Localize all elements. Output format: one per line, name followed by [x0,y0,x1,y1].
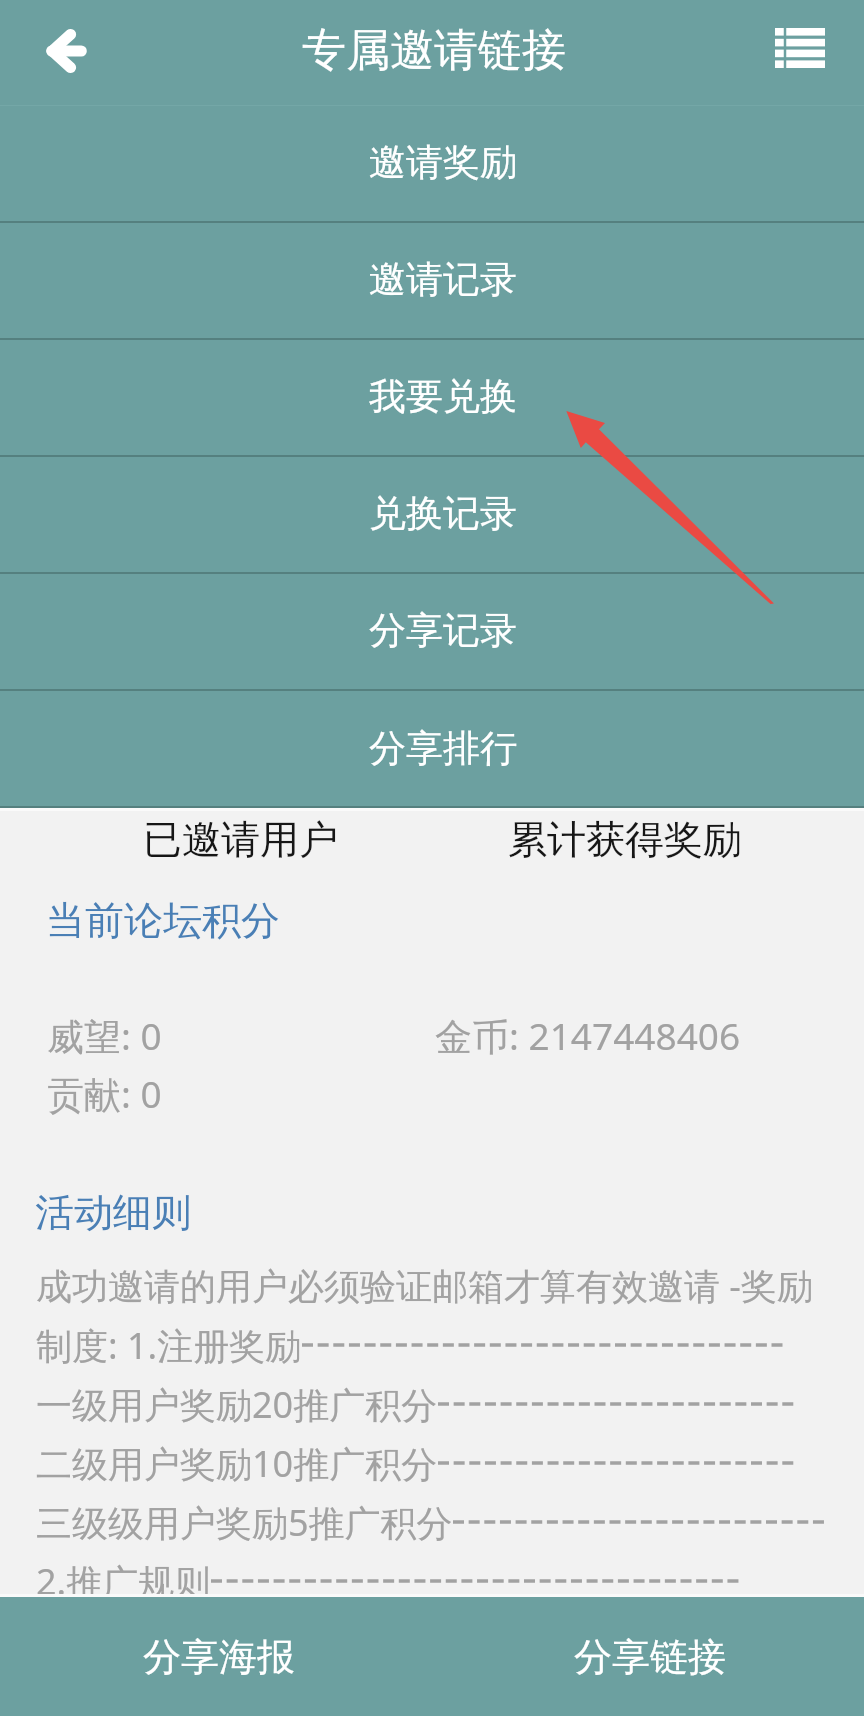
staticText: 贡献: 0 [47,1068,162,1119]
staticText: 成功邀请的用户必须验证邮箱才算有效邀请 -奖励 制度: 1.注册奖励 一级用户奖… [36,1261,813,1605]
staticText: 威望: 0 [47,1010,162,1061]
staticText: 已邀请用户 [143,815,338,864]
staticText: 分享海报 [143,1633,295,1681]
staticText: 金币: 2147448406 [435,1010,741,1061]
staticText: 分享记录 [369,607,517,654]
staticText: 专属邀请链接 [302,23,566,78]
button[interactable]: 邀请奖励 [0,106,864,221]
staticText: 累计获得奖励 [508,815,742,864]
button[interactable]: 分享海报 [0,1597,432,1716]
staticText: 邀请奖励 [369,139,517,186]
staticText: 兑换记录 [369,490,517,537]
button[interactable]: 我要兑换 [0,340,864,455]
staticText: 活动细则 [35,1188,191,1237]
button[interactable]: 分享排行 [0,691,864,808]
button[interactable]: 分享链接 [432,1597,864,1716]
button[interactable]: 分享记录 [0,574,864,689]
staticText: 我要兑换 [369,373,517,420]
staticText: 分享排行 [369,725,517,772]
staticText: 当前论坛积分 [46,896,280,945]
button[interactable]: 邀请记录 [0,223,864,338]
staticText: 分享链接 [574,1633,726,1681]
button[interactable]: Menu [760,8,840,88]
button[interactable]: 兑换记录 [0,457,864,572]
button[interactable]: Back [22,7,110,95]
staticText: 邀请记录 [369,256,517,303]
